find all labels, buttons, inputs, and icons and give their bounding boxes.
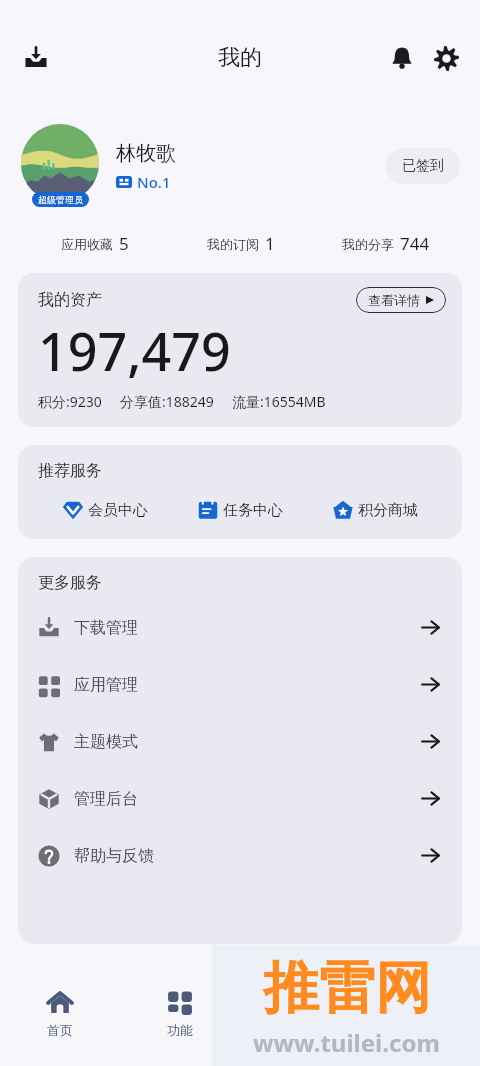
button[interactable]: Downloads bbox=[14, 36, 58, 80]
button[interactable]: 查看详情 bbox=[356, 287, 446, 313]
staticText: 超级管理员 bbox=[38, 194, 83, 205]
button[interactable]: 应用收藏 bbox=[22, 232, 168, 255]
staticText: 1 bbox=[265, 232, 275, 255]
staticText: 积分:9230 bbox=[38, 392, 102, 411]
staticText: 首页 bbox=[47, 1022, 73, 1038]
button[interactable]: 下载管理 bbox=[18, 599, 462, 656]
button[interactable]: 会员中心 bbox=[38, 499, 172, 521]
staticText: 197,479 bbox=[38, 315, 231, 386]
button[interactable]: 主题模式 bbox=[18, 713, 462, 770]
staticText: 推荐服务 bbox=[38, 461, 102, 481]
staticText: 帮助与反馈 bbox=[74, 846, 421, 866]
button[interactable]: 管理后台 bbox=[18, 770, 462, 827]
button[interactable]: 功能 bbox=[120, 990, 240, 1066]
button[interactable]: 我的分享 bbox=[313, 232, 458, 255]
staticText: 744 bbox=[400, 232, 430, 255]
staticText: 我的分享 bbox=[342, 236, 394, 252]
staticText: 我的资产 bbox=[38, 290, 356, 310]
staticText: 5 bbox=[119, 232, 129, 255]
staticText: 主题模式 bbox=[74, 732, 421, 752]
staticText: 已签到 bbox=[402, 157, 444, 175]
button[interactable]: 应用管理 bbox=[18, 656, 462, 713]
staticText: 功能 bbox=[167, 1022, 193, 1038]
staticText: 我的 bbox=[218, 44, 262, 72]
staticText: 我的订阅 bbox=[207, 236, 259, 252]
button[interactable]: Settings bbox=[424, 36, 468, 80]
staticText: 更多服务 bbox=[38, 573, 102, 593]
button[interactable]: 我的订阅 bbox=[168, 232, 313, 255]
button[interactable]: 任务中心 bbox=[172, 499, 307, 521]
staticText: 下载管理 bbox=[74, 618, 421, 638]
staticText: 应用管理 bbox=[74, 675, 421, 695]
staticText: www.tuilei.com bbox=[253, 1026, 440, 1059]
button[interactable]: 积分商城 bbox=[307, 499, 442, 521]
staticText: No.1 bbox=[137, 172, 171, 192]
staticText: 林牧歌 bbox=[116, 141, 176, 166]
button[interactable]: 首页 bbox=[0, 990, 120, 1066]
staticText: 分享值:188249 bbox=[120, 392, 214, 411]
staticText: 查看详情 bbox=[368, 292, 420, 308]
staticText: 应用收藏 bbox=[61, 236, 113, 252]
staticText: 推雷网 bbox=[263, 953, 431, 1024]
staticText: 积分商城 bbox=[358, 501, 418, 520]
staticText: 流量:16554MB bbox=[232, 392, 326, 411]
staticText: 任务中心 bbox=[223, 501, 283, 520]
button[interactable]: 已签到 bbox=[386, 148, 460, 184]
button[interactable]: Notifications bbox=[380, 36, 424, 80]
button[interactable]: 帮助与反馈 bbox=[18, 827, 462, 884]
staticText: 管理后台 bbox=[74, 789, 421, 809]
staticText: 会员中心 bbox=[88, 501, 148, 520]
